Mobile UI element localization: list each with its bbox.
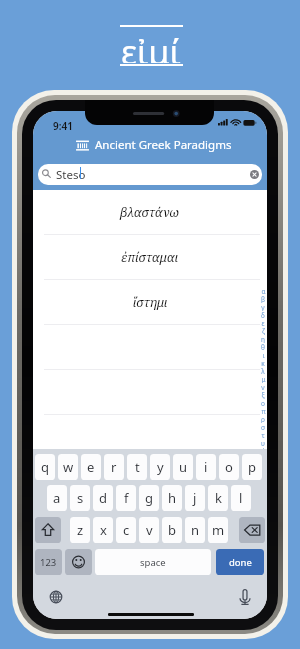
staticText: k bbox=[215, 489, 222, 507]
button[interactable]: space bbox=[95, 549, 211, 575]
button[interactable]: x bbox=[93, 517, 113, 543]
staticText: e bbox=[87, 458, 95, 476]
staticText: ω bbox=[260, 471, 266, 479]
staticText: α bbox=[261, 287, 266, 295]
button[interactable]: j bbox=[185, 485, 205, 511]
staticText: γ bbox=[261, 303, 265, 311]
button[interactable]: k bbox=[208, 485, 228, 511]
staticText: θ bbox=[261, 343, 265, 351]
staticText: μ bbox=[261, 375, 266, 383]
staticText: m bbox=[212, 521, 225, 539]
staticText: π bbox=[261, 407, 266, 415]
button[interactable]: v bbox=[139, 517, 159, 543]
staticText: υ bbox=[261, 439, 265, 447]
staticText: i bbox=[204, 458, 208, 476]
staticText: v bbox=[146, 521, 153, 539]
staticText: βλαστάνω bbox=[120, 204, 180, 221]
button[interactable] bbox=[33, 325, 267, 370]
button[interactable]: l bbox=[231, 485, 251, 511]
staticText: u bbox=[179, 458, 188, 476]
button[interactable]: Ancient Greek Paradigms bbox=[75, 137, 232, 153]
staticText: h bbox=[168, 489, 177, 507]
button[interactable]: Dictation bbox=[236, 588, 254, 606]
button[interactable]: w bbox=[58, 454, 78, 480]
button[interactable]: done bbox=[216, 549, 264, 575]
button[interactable]: n bbox=[185, 517, 205, 543]
button[interactable]: Change keyboard bbox=[48, 589, 64, 605]
staticText: η bbox=[261, 335, 265, 343]
staticText: w bbox=[63, 458, 74, 476]
button[interactable]: b bbox=[162, 517, 182, 543]
button[interactable]: r bbox=[104, 454, 124, 480]
button[interactable]: t bbox=[127, 454, 147, 480]
button[interactable]: z bbox=[70, 517, 90, 543]
staticText: n bbox=[191, 521, 200, 539]
staticText: β bbox=[261, 295, 265, 303]
button[interactable]: h bbox=[162, 485, 182, 511]
button[interactable]: 123 bbox=[35, 549, 62, 575]
button[interactable]: p bbox=[242, 454, 262, 480]
button[interactable]: o bbox=[219, 454, 239, 480]
staticText: ἐπίσταμαι bbox=[121, 249, 179, 266]
button[interactable]: Delete bbox=[239, 517, 265, 543]
staticText: ι bbox=[262, 351, 265, 359]
staticText: space bbox=[140, 556, 166, 569]
staticText: y bbox=[157, 458, 164, 476]
staticText: ζ bbox=[262, 327, 265, 335]
staticText: d bbox=[99, 489, 107, 507]
staticText: l bbox=[239, 489, 243, 507]
button[interactable]: s bbox=[70, 485, 90, 511]
staticText: ξ bbox=[261, 391, 265, 399]
button[interactable]: Shift bbox=[35, 517, 61, 543]
button[interactable]: Emoji bbox=[65, 549, 92, 575]
staticText: ε bbox=[261, 319, 265, 327]
staticText: q bbox=[41, 458, 49, 476]
staticText: b bbox=[168, 521, 176, 539]
staticText: κ bbox=[261, 359, 265, 367]
button[interactable]: Clear text bbox=[250, 170, 259, 179]
staticText: x bbox=[100, 521, 107, 539]
staticText: s bbox=[77, 489, 84, 507]
button[interactable]: βλαστάνω bbox=[33, 190, 267, 235]
button[interactable]: ἐπίσταμαι bbox=[33, 235, 267, 280]
staticText: c bbox=[123, 521, 130, 539]
staticText: σ bbox=[261, 423, 265, 431]
staticText: t bbox=[135, 458, 140, 476]
staticText: ψ bbox=[261, 463, 266, 471]
button[interactable]: i bbox=[196, 454, 216, 480]
button[interactable]: Steso bbox=[38, 164, 262, 185]
staticText: δ bbox=[261, 311, 265, 319]
staticText: Steso bbox=[56, 167, 86, 183]
staticText: τ bbox=[261, 431, 265, 439]
staticText: λ bbox=[261, 367, 265, 375]
button[interactable]: ἵστημι bbox=[33, 280, 267, 325]
button[interactable]: e bbox=[81, 454, 101, 480]
staticText: εἰμί bbox=[121, 29, 181, 63]
button[interactable]: m bbox=[208, 517, 228, 543]
staticText: done bbox=[229, 556, 252, 569]
button[interactable]: g bbox=[139, 485, 159, 511]
button[interactable]: a bbox=[47, 485, 67, 511]
staticText: a bbox=[53, 489, 61, 507]
button[interactable]: u bbox=[173, 454, 193, 480]
staticText: ο bbox=[261, 399, 265, 407]
staticText: o bbox=[225, 458, 233, 476]
button[interactable]: c bbox=[116, 517, 136, 543]
staticText: f bbox=[124, 489, 129, 507]
staticText: 9:41 bbox=[53, 119, 73, 133]
button[interactable] bbox=[33, 415, 267, 460]
staticText: ἵστημι bbox=[133, 294, 168, 311]
staticText: z bbox=[77, 521, 84, 539]
staticText: ν bbox=[261, 383, 265, 391]
staticText: r bbox=[111, 458, 117, 476]
staticText: p bbox=[248, 458, 256, 476]
button[interactable] bbox=[33, 370, 267, 415]
button[interactable]: y bbox=[150, 454, 170, 480]
button[interactable]: f bbox=[116, 485, 136, 511]
staticText: χ bbox=[261, 455, 265, 463]
staticText: φ bbox=[261, 447, 266, 455]
staticText: j bbox=[193, 489, 197, 507]
staticText: Ancient Greek Paradigms bbox=[95, 137, 232, 153]
button[interactable]: d bbox=[93, 485, 113, 511]
button[interactable]: q bbox=[35, 454, 55, 480]
